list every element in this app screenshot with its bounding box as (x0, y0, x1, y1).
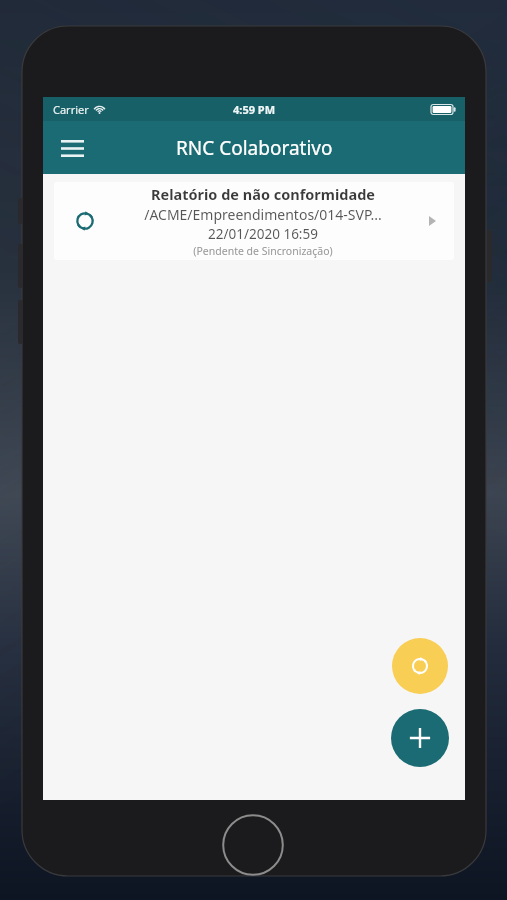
button[interactable]: Menu (50, 126, 94, 170)
staticText: /ACME/Empreendimentos/014-SVP... (144, 205, 382, 224)
staticText: 22/01/2020 16:59 (208, 225, 318, 243)
button[interactable]: Adicionar (391, 709, 449, 767)
staticText: Relatório de não conformidade (151, 184, 375, 204)
staticText: 4:59 PM (233, 102, 276, 117)
staticText: Carrier (53, 102, 89, 117)
staticText: RNC Colaborativo (176, 135, 333, 161)
button[interactable]: Relatório de não conformidade (54, 182, 454, 260)
button[interactable]: Sincronizar (392, 638, 448, 694)
staticText: (Pendente de Sincronização) (193, 244, 333, 258)
